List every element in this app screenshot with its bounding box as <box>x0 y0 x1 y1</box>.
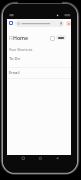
staticText: Home <box>13 34 29 41</box>
button[interactable] <box>14 153 32 163</box>
button[interactable] <box>50 36 55 41</box>
button[interactable] <box>48 153 66 163</box>
button[interactable]: To Do <box>7 54 71 66</box>
staticText: Your Shortcuts <box>9 47 33 52</box>
button[interactable] <box>66 21 71 26</box>
button[interactable]: Email <box>7 68 71 80</box>
button[interactable] <box>56 35 66 40</box>
button[interactable] <box>9 21 13 25</box>
staticText: Email <box>9 70 20 76</box>
staticText: To Do <box>9 56 20 62</box>
button[interactable] <box>15 20 64 27</box>
button[interactable] <box>31 153 49 163</box>
